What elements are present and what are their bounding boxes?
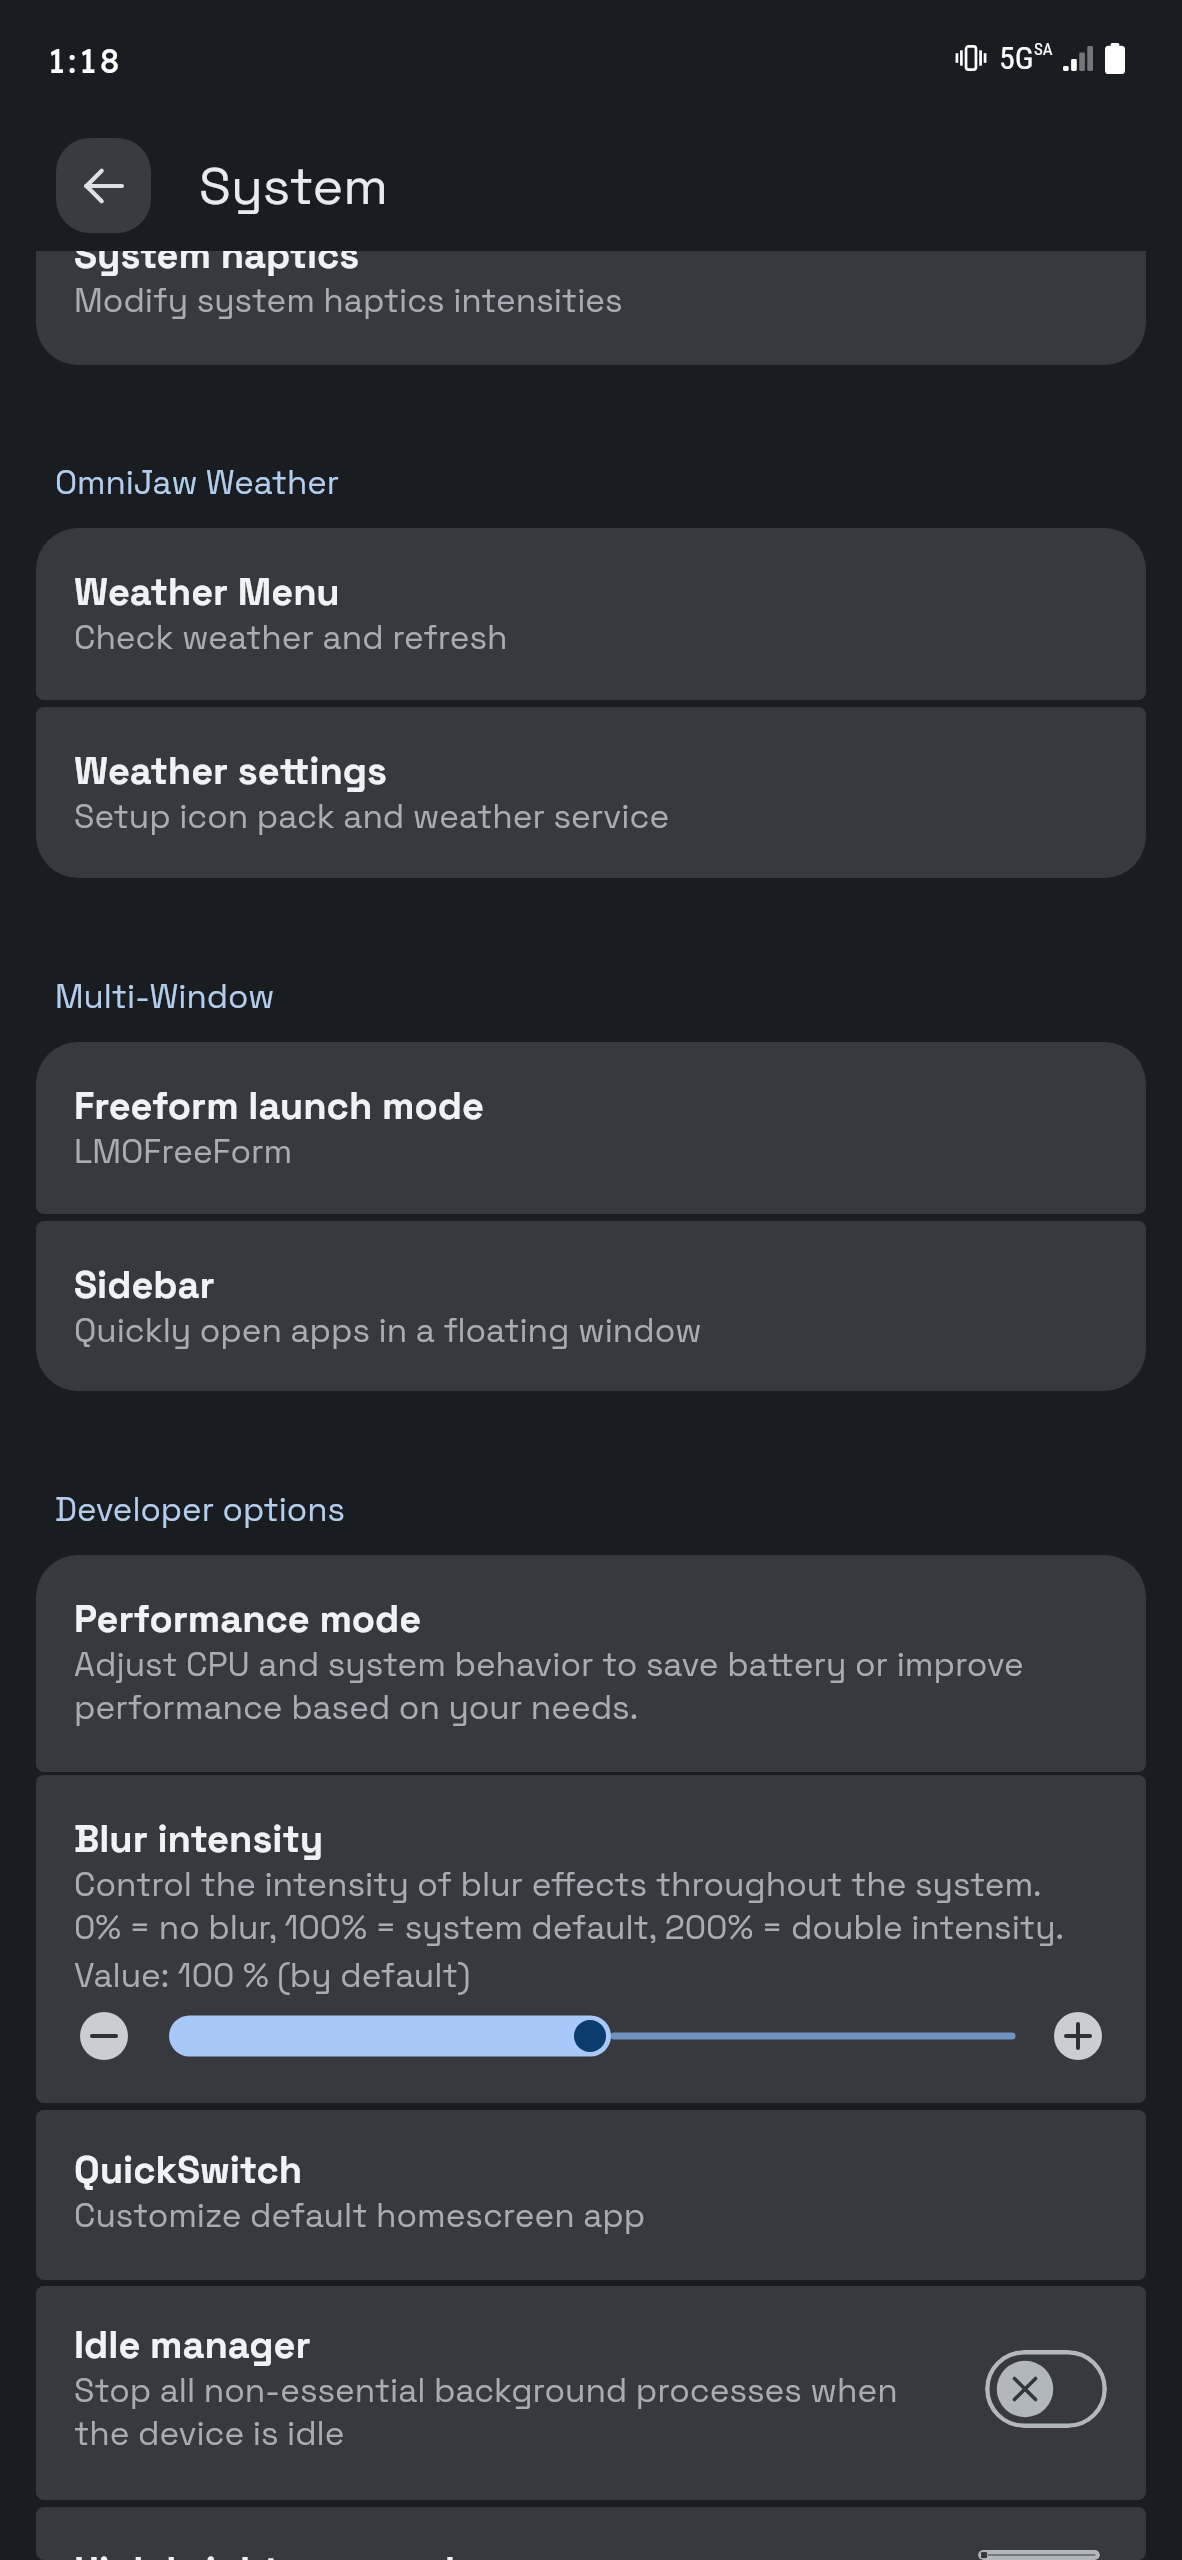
- staticText: Weather settings: [74, 745, 388, 795]
- staticText: Modify system haptics intensities: [74, 279, 623, 322]
- button[interactable]: Idle manager: [36, 2286, 1146, 2500]
- button[interactable]: System haptics: [36, 251, 1146, 365]
- staticText: Freeform launch mode: [74, 1080, 484, 1130]
- staticText: Performance mode: [74, 1593, 422, 1643]
- button[interactable]: Weather settings: [36, 707, 1146, 878]
- button[interactable]: Freeform launch mode: [36, 1042, 1146, 1214]
- staticText: Setup icon pack and weather service: [74, 795, 670, 838]
- staticText: OmniJaw Weather: [55, 465, 340, 503]
- button[interactable]: High brightness mode: [36, 2507, 1146, 2560]
- button[interactable]: QuickSwitch: [36, 2110, 1146, 2280]
- staticText: Stop all non-essential background proces…: [74, 2369, 936, 2455]
- button[interactable]: Increase value: [1054, 2012, 1102, 2060]
- staticText: Developer options: [55, 1492, 345, 1530]
- staticText: Adjust CPU and system behavior to save b…: [74, 1643, 1108, 1729]
- button[interactable]: Toggle off: [978, 2550, 1100, 2560]
- staticText: LMOFreeForm: [74, 1130, 293, 1173]
- staticText: Idle manager: [74, 2319, 311, 2369]
- staticText: Weather Menu: [74, 566, 340, 616]
- button[interactable]: Sidebar: [36, 1221, 1146, 1391]
- staticText: Value: 100 % (by default): [74, 1954, 471, 1997]
- staticText: Control the intensity of blur effects th…: [74, 1863, 1064, 1949]
- button[interactable]: Weather Menu: [36, 528, 1146, 700]
- button[interactable]: Toggle off: [985, 2350, 1107, 2428]
- staticText: Quickly open apps in a floating window: [74, 1309, 702, 1352]
- staticText: Multi-Window: [55, 979, 275, 1017]
- staticText: System: [199, 153, 388, 219]
- staticText: QuickSwitch: [74, 2144, 303, 2194]
- staticText: 5G: [999, 39, 1034, 77]
- staticText: SA: [1034, 39, 1053, 59]
- staticText: Blur intensity: [74, 1813, 324, 1863]
- staticText: Check weather and refresh: [74, 616, 508, 659]
- button[interactable]: Back: [56, 138, 151, 233]
- staticText: High brightness mode: [74, 2545, 477, 2560]
- button[interactable]: Performance mode: [36, 1555, 1146, 1772]
- staticText: Customize default homescreen app: [74, 2194, 646, 2237]
- staticText: 1:18: [48, 39, 123, 82]
- button[interactable]: Decrease value: [80, 2012, 128, 2060]
- staticText: Sidebar: [74, 1259, 215, 1309]
- button[interactable]: Blur intensity: [36, 1775, 1146, 2103]
- staticText: System haptics: [74, 251, 360, 279]
